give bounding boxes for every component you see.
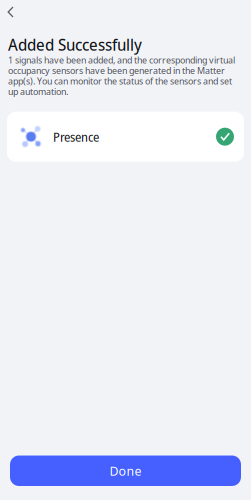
button[interactable]: Done [10, 455, 241, 486]
staticText: Presence [53, 128, 99, 146]
staticText: 1 signals have been added, and the corre… [8, 53, 235, 98]
button[interactable]: Back [0, 1, 24, 23]
staticText: Done [109, 462, 141, 479]
staticText: Added Successfully [8, 34, 142, 55]
